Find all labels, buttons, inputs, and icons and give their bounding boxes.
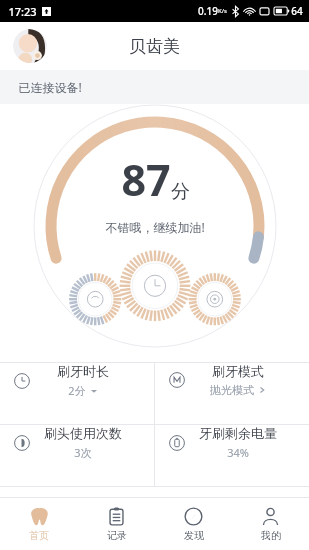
staticText: 刷头使用次数 xyxy=(44,425,122,441)
staticText: 贝齿美 xyxy=(129,36,180,57)
button[interactable]: 记录 xyxy=(78,498,155,550)
staticText: K/s xyxy=(218,7,227,15)
staticText: 2分 xyxy=(68,383,86,398)
button[interactable]: 牙刷剩余电量 xyxy=(155,425,309,460)
button[interactable]: 已连接设备! xyxy=(0,70,309,104)
staticText: 已连接设备! xyxy=(18,79,82,95)
staticText: 64 xyxy=(291,4,303,18)
staticText: 记录 xyxy=(107,529,127,542)
button[interactable]: 刷头使用次数 xyxy=(0,425,154,460)
staticText: 刷牙时长 xyxy=(57,363,109,379)
staticText: 我的 xyxy=(261,529,281,542)
staticText: 分 xyxy=(171,180,190,204)
button[interactable]: 刷牙时长 xyxy=(0,363,154,398)
staticText: 0.19 xyxy=(198,4,218,18)
staticText: 17:23 xyxy=(8,4,37,19)
button[interactable]: 发现 xyxy=(155,498,232,550)
staticText: 87 xyxy=(121,150,171,209)
staticText: 牙刷剩余电量 xyxy=(199,425,277,441)
staticText: 刷牙模式 xyxy=(212,363,264,379)
staticText: 发现 xyxy=(184,529,204,542)
staticText: 34% xyxy=(227,445,249,460)
staticText: 不错哦，继续加油! xyxy=(105,219,205,235)
button[interactable]: 首页 xyxy=(0,498,78,550)
button[interactable]: 我的 xyxy=(232,498,309,550)
staticText: 3次 xyxy=(74,445,92,460)
staticText: 首页 xyxy=(29,529,49,542)
button[interactable]: 刷牙模式 xyxy=(155,363,309,397)
button[interactable]: Profile xyxy=(13,29,47,63)
staticText: 抛光模式 xyxy=(210,383,254,397)
